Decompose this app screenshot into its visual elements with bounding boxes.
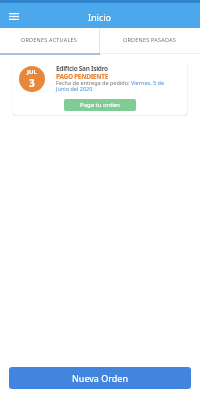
button[interactable]: Menu: [5, 8, 22, 25]
button[interactable]: Paga tu orden: [64, 99, 136, 111]
staticText: PAGO PENDIENTE: [56, 72, 108, 81]
button[interactable]: JUL: [13, 63, 187, 115]
button[interactable]: ORDENES PASADAS: [100, 28, 200, 55]
staticText: Inicio: [88, 11, 112, 23]
button[interactable]: Nueva Orden: [9, 367, 191, 389]
staticText: Nueva Orden: [72, 372, 128, 384]
staticText: ORDENES ACTUALES: [21, 36, 78, 43]
button[interactable]: ORDENES ACTUALES: [0, 28, 99, 55]
staticText: Fecha de entrega de pedido: Viernes, 5 d…: [56, 79, 171, 93]
staticText: Edificio San Isidro: [56, 64, 108, 73]
staticText: JUL: [27, 68, 37, 76]
staticText: Paga tu orden: [80, 101, 120, 109]
staticText: 3: [29, 76, 35, 90]
staticText: ORDENES PASADAS: [123, 36, 177, 43]
